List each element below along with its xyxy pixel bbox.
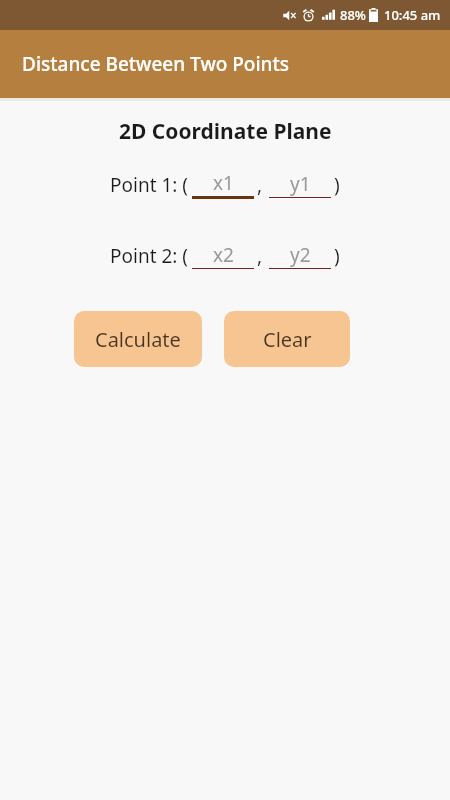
staticText: Point 1: ( (110, 172, 189, 198)
staticText: Point 2: ( (110, 243, 189, 269)
staticText: , (257, 243, 263, 269)
button[interactable]: x1 (192, 170, 254, 199)
other: Mute (283, 9, 296, 22)
staticText: 2D Coordinate Plane (119, 117, 332, 146)
button[interactable]: y2 (269, 242, 331, 269)
staticText: 10:45 am (384, 6, 441, 24)
staticText: x1 (213, 170, 234, 196)
staticText: ) (334, 243, 340, 269)
button[interactable]: Clear (224, 311, 350, 367)
button[interactable]: y1 (269, 171, 331, 198)
staticText: x2 (213, 242, 234, 268)
staticText: y2 (290, 242, 311, 268)
other: Battery (369, 8, 378, 22)
other: Alarm (302, 9, 315, 22)
staticText: 88% (340, 6, 366, 24)
button[interactable]: Calculate (74, 311, 202, 367)
staticText: y1 (290, 171, 311, 197)
staticText: Calculate (95, 326, 181, 353)
staticText: ) (334, 172, 340, 198)
button[interactable]: x2 (192, 242, 254, 269)
other: Signal strength (322, 9, 335, 21)
staticText: Distance Between Two Points (22, 51, 290, 77)
staticText: , (257, 172, 263, 198)
staticText: Clear (263, 326, 312, 353)
